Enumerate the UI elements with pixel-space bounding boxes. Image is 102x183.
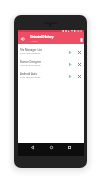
staticText: 1 apps [30,39,38,42]
button[interactable]: Remove from history [75,48,83,56]
staticText: File Manager Lite [20,48,43,52]
staticText: Android Auto [20,72,38,76]
button[interactable]: Remove from history [75,60,83,68]
button[interactable]: Recent apps [65,143,74,152]
button[interactable]: Back [19,35,26,42]
staticText: Button Designer [20,60,42,64]
button[interactable]: Home [47,143,56,152]
button[interactable]: Clear history [78,37,84,43]
staticText: 4 May 2019 5:10:00 am [20,64,41,67]
button[interactable]: Button Designer [18,56,84,68]
button[interactable]: File Manager Lite [18,44,84,56]
button[interactable]: Back [28,143,37,152]
button[interactable]: Open in Play Store [66,60,74,68]
button[interactable]: Open in Play Store [66,48,74,56]
button[interactable]: Android Auto [18,68,84,80]
button[interactable]: Remove from history [75,72,83,80]
button[interactable]: Open in Play Store [66,72,74,80]
staticText: Uninstall History [30,35,54,39]
staticText: 3 May 2019 4:20:00 am [20,52,41,55]
staticText: 5 May 2019 6:20:02 am [20,76,41,79]
